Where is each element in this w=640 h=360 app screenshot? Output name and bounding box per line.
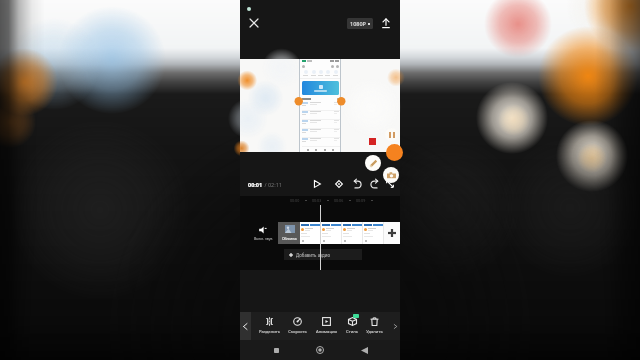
button[interactable]: Back <box>356 342 372 358</box>
staticText: Удалить <box>366 329 383 335</box>
button[interactable]: Обложка <box>278 222 300 244</box>
button[interactable]: Undo <box>350 177 364 191</box>
button[interactable]: Redo <box>367 177 381 191</box>
button[interactable]: Выкл. звук <box>251 226 275 241</box>
button[interactable]: Recorder menu <box>386 144 403 161</box>
button[interactable]: Play <box>310 177 324 191</box>
staticText: Выкл. звук <box>254 236 273 241</box>
button[interactable]: Стиль <box>345 317 359 335</box>
button[interactable]: Добавить аудио <box>284 249 362 260</box>
staticText: 1080P <box>350 20 366 27</box>
button[interactable]: Keyframe <box>332 177 346 191</box>
button[interactable]: Анимация <box>315 317 338 335</box>
button[interactable]: Previous <box>240 312 251 340</box>
button[interactable]: Close <box>247 16 261 30</box>
staticText: Разделить <box>259 329 280 335</box>
button[interactable]: Export <box>379 16 393 30</box>
staticText: Обложка <box>282 236 297 241</box>
staticText: 00:01 <box>248 181 263 188</box>
button[interactable]: Camera <box>383 167 399 183</box>
button[interactable]: Удалить <box>365 317 384 335</box>
staticText: 00:06 <box>334 198 344 203</box>
button[interactable]: Разделить <box>258 317 281 335</box>
button[interactable]: Home <box>312 342 328 358</box>
button[interactable]: Fullscreen <box>383 177 397 191</box>
staticText: Анимация <box>316 329 337 335</box>
button[interactable]: Скорость <box>287 317 308 335</box>
staticText: Добавить аудио <box>296 252 331 258</box>
staticText: 00:00 <box>290 198 300 203</box>
staticText: Скорость <box>288 329 307 335</box>
staticText: 00:09 <box>356 198 366 203</box>
button[interactable]: Add clip <box>384 222 400 244</box>
button[interactable]: Recents <box>268 342 284 358</box>
staticText: Стиль <box>346 329 358 335</box>
staticText: / 02:11 <box>263 181 282 188</box>
button[interactable]: More tools <box>391 312 400 340</box>
staticText: 00:03 <box>312 198 322 203</box>
button[interactable]: Draw <box>365 155 381 171</box>
button[interactable]: 1080P <box>347 18 373 29</box>
